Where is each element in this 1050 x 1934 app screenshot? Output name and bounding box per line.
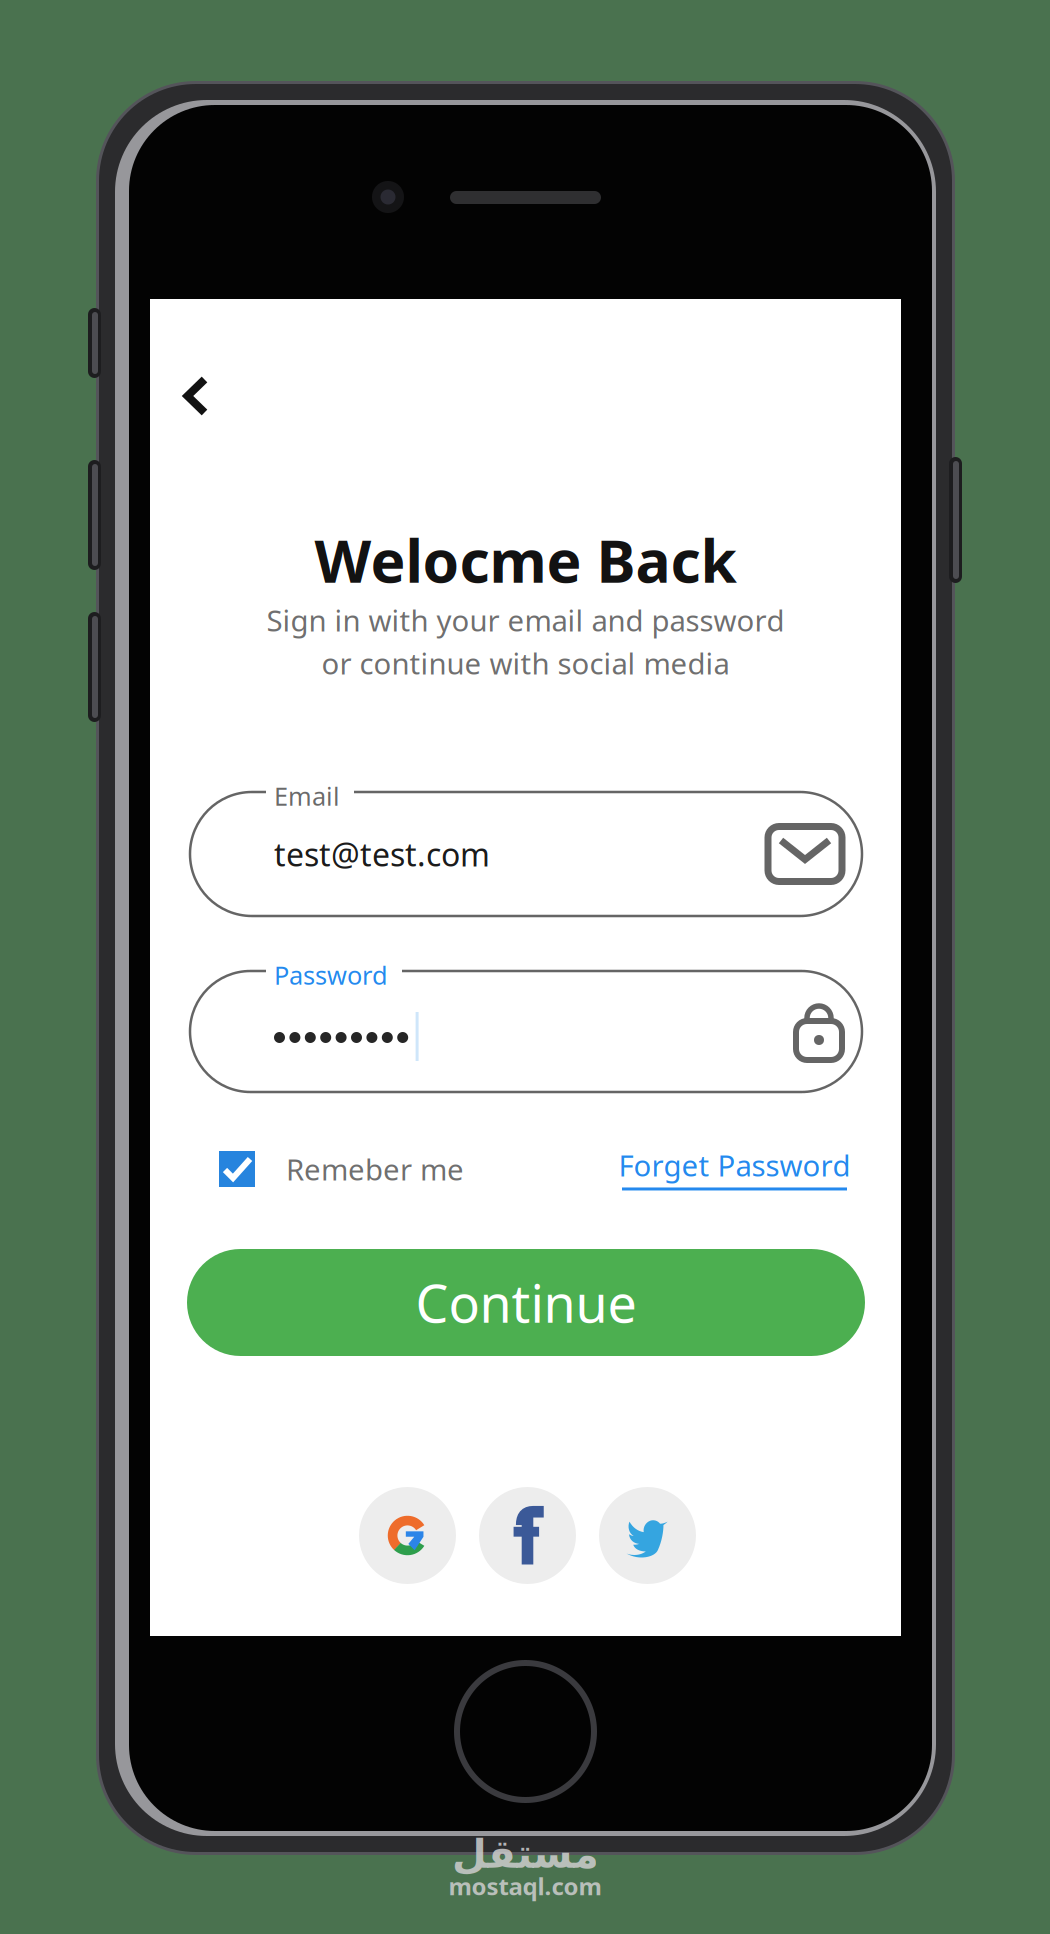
button[interactable]: Continue bbox=[187, 1249, 865, 1356]
staticText: Remeber me bbox=[286, 1149, 464, 1188]
staticText: test@test.com bbox=[274, 833, 490, 875]
staticText: Email bbox=[274, 779, 340, 813]
button[interactable]: Continue with Twitter bbox=[599, 1487, 696, 1584]
button[interactable]: Forget Password bbox=[622, 1145, 847, 1191]
staticText: Sign in with your email and password bbox=[266, 600, 784, 639]
button[interactable]: Back bbox=[158, 358, 234, 434]
staticText: Password bbox=[274, 958, 388, 992]
staticText: Continue bbox=[415, 1268, 636, 1337]
button[interactable]: Continue with Google bbox=[359, 1487, 456, 1584]
staticText: Forget Password bbox=[618, 1145, 850, 1184]
button[interactable]: Remeber me bbox=[219, 1141, 519, 1197]
staticText: or continue with social media bbox=[321, 643, 729, 682]
staticText: Welocme Back bbox=[314, 521, 736, 599]
button[interactable]: Continue with Facebook bbox=[479, 1487, 576, 1584]
staticText: mostaql.com bbox=[448, 1870, 601, 1902]
staticText: مستقل bbox=[451, 1831, 598, 1877]
